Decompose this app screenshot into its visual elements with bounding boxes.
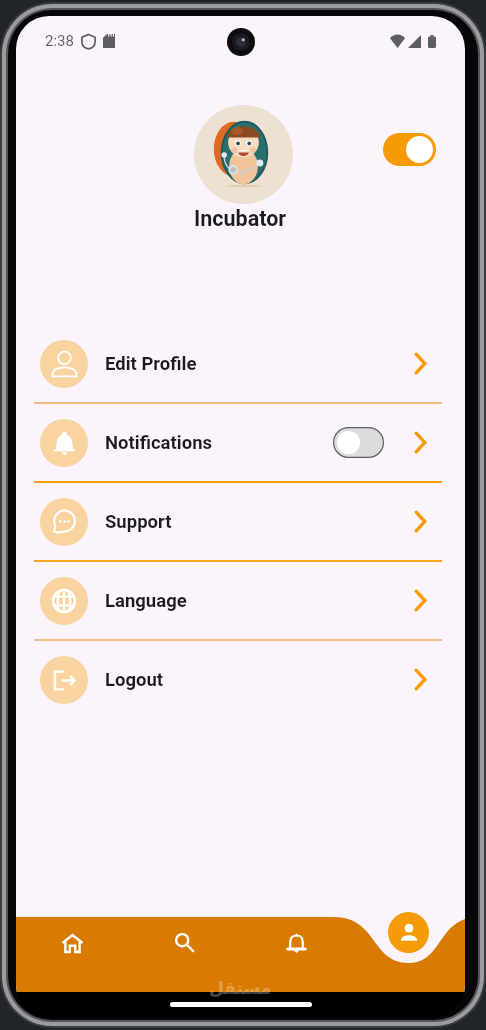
staticText: Logout: [105, 669, 164, 691]
button[interactable]: Language: [16, 562, 465, 639]
button[interactable]: Edit Profile: [16, 325, 465, 402]
staticText: Support: [105, 511, 172, 533]
staticText: Incubator: [194, 206, 287, 231]
button[interactable]: Profile: [388, 912, 429, 953]
button[interactable]: Logout: [16, 641, 465, 718]
staticText: Notifications: [105, 432, 213, 454]
staticText: مستقل: [209, 978, 272, 998]
button[interactable]: Search: [162, 920, 206, 964]
button[interactable]: Home: [50, 921, 94, 965]
button[interactable]: Support: [16, 483, 465, 560]
button[interactable]: Profile picture: [194, 105, 293, 204]
staticText: 2:38: [45, 32, 74, 50]
button[interactable]: Notifications: [16, 404, 465, 481]
button[interactable]: Notifications: [274, 921, 318, 965]
staticText: Edit Profile: [105, 353, 197, 375]
button[interactable]: Notifications toggle: [333, 427, 384, 458]
button[interactable]: Theme toggle: [383, 133, 436, 166]
staticText: Language: [105, 590, 187, 612]
